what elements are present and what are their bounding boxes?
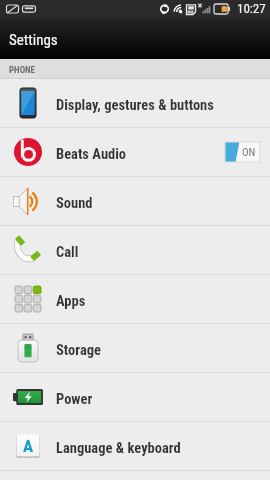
button[interactable]: Storage: [0, 324, 270, 373]
staticText: Storage: [56, 342, 101, 359]
button[interactable]: Sound: [0, 177, 270, 226]
button[interactable]: A: [0, 422, 270, 471]
button[interactable]: Power: [0, 373, 270, 422]
staticText: 10:27: [237, 1, 266, 16]
button[interactable]: Beats Audio: [0, 128, 270, 177]
staticText: Beats Audio: [56, 146, 127, 163]
staticText: Display, gestures & buttons: [56, 97, 214, 114]
staticText: Settings: [9, 31, 58, 49]
staticText: Call: [56, 244, 79, 261]
button[interactable]: Display, gestures & buttons: [0, 79, 270, 128]
button[interactable]: ON: [225, 142, 260, 162]
staticText: Language & keyboard: [56, 440, 181, 457]
staticText: Power: [56, 391, 93, 408]
staticText: A: [23, 436, 34, 456]
staticText: Sound: [56, 195, 93, 212]
staticText: Apps: [56, 293, 86, 310]
button[interactable]: Call: [0, 226, 270, 275]
button[interactable]: Apps: [0, 275, 270, 324]
staticText: ON: [242, 146, 256, 159]
staticText: PHONE: [9, 65, 36, 76]
